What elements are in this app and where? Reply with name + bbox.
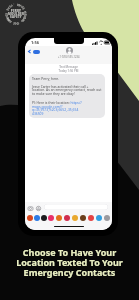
staticText: maps.google.com/? q=35,9573,%2C6,6652,-3… xyxy=(32,104,79,116)
button[interactable]: App xyxy=(80,215,86,221)
button[interactable]: App xyxy=(41,215,47,221)
staticText: Team Perry, here. xyxy=(32,76,60,80)
button[interactable]: Perry Moulder Safety logo xyxy=(4,2,28,26)
staticText: Pl: Here is their location: https:// xyxy=(32,100,82,104)
button[interactable]: App xyxy=(72,215,78,221)
staticText: Choose To Have Your Location Texted To Y… xyxy=(0,246,139,279)
button[interactable]: App xyxy=(64,215,70,221)
button[interactable]: Camera xyxy=(28,206,33,211)
button[interactable]: App xyxy=(56,215,62,221)
button[interactable]: Back xyxy=(27,49,40,54)
button[interactable]: App Store xyxy=(36,206,41,211)
button[interactable]: App xyxy=(96,215,102,221)
staticText: +1 (555) 555-1234 xyxy=(58,55,80,59)
button[interactable]: App xyxy=(104,215,110,221)
button[interactable]: App xyxy=(27,215,33,221)
staticText: Jesse Carter has activated their call + … xyxy=(32,84,102,96)
button[interactable]: App xyxy=(88,215,94,221)
button[interactable]: App xyxy=(34,215,40,221)
button[interactable]: App xyxy=(48,215,54,221)
staticText: 1:56 xyxy=(31,40,39,45)
button[interactable]: Message field xyxy=(44,204,108,210)
staticText: Text Message Today 1:56 PM xyxy=(25,65,112,73)
